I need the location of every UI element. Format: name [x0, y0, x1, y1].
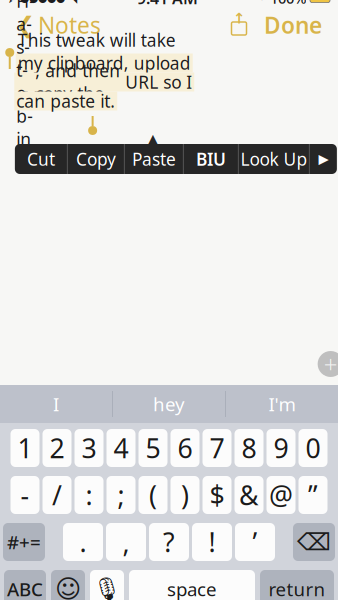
button[interactable]: 7 — [202, 429, 231, 467]
button[interactable]: Copy — [68, 144, 124, 174]
staticText: 100% — [266, 0, 310, 8]
button[interactable]: Paste — [125, 144, 183, 174]
staticText: ᶠ — [330, 0, 333, 7]
button[interactable]: space — [129, 570, 255, 600]
staticText: 🎙 — [92, 576, 121, 600]
button[interactable]: 5 — [138, 429, 167, 467]
button[interactable]: ❮ — [8, 9, 109, 41]
staticText: ! — [208, 524, 215, 560]
staticText: Copy — [76, 147, 116, 170]
button[interactable]: ( — [138, 476, 167, 514]
staticText: , — [122, 524, 129, 560]
button[interactable]: Emoji — [51, 570, 85, 600]
button[interactable]: B — [184, 144, 238, 174]
button[interactable]: Delete — [293, 523, 335, 561]
staticText: U — [213, 147, 226, 170]
button[interactable]: 2 — [42, 429, 71, 467]
button[interactable]: ? — [149, 523, 189, 561]
button[interactable]: Look Up — [239, 144, 309, 174]
staticText: 3 — [81, 430, 96, 466]
staticText: Look Up — [240, 147, 307, 170]
button[interactable]: 8 — [234, 429, 263, 467]
staticText: ABC — [7, 577, 43, 600]
button[interactable]: 4 — [106, 429, 135, 467]
button[interactable]: Dictation — [90, 570, 124, 600]
staticText: #+= — [7, 530, 41, 554]
staticText: ) — [181, 477, 189, 513]
button[interactable]: - — [10, 476, 39, 514]
button[interactable]: hey — [113, 385, 225, 423]
staticText: : — [85, 477, 92, 513]
button[interactable]: 0 — [298, 429, 327, 467]
staticText: 2 — [49, 430, 64, 466]
staticText: ●●●●● — [17, 0, 68, 4]
staticText: ? — [163, 524, 175, 560]
button[interactable]: . — [63, 523, 103, 561]
button[interactable]: Cut — [15, 144, 67, 174]
staticText: Notes — [38, 10, 101, 40]
button[interactable]: ABC — [4, 570, 46, 600]
button[interactable]: & — [234, 476, 263, 514]
staticText: ’ — [252, 524, 257, 560]
button[interactable]: Share — [222, 9, 256, 41]
button[interactable]: 1 — [10, 429, 39, 467]
staticText: . — [79, 524, 86, 560]
button[interactable]: 9 — [266, 429, 295, 467]
staticText: Paste — [132, 147, 176, 170]
staticText: 1 — [17, 430, 32, 466]
button[interactable]: ; — [106, 476, 135, 514]
staticText: can paste it. — [16, 89, 115, 112]
staticText: 8 — [241, 430, 256, 466]
staticText: 6 — [177, 430, 192, 466]
staticText: return — [268, 577, 325, 600]
staticText: 0 — [305, 430, 320, 466]
button[interactable]: #+= — [3, 523, 45, 561]
button[interactable]: , — [106, 523, 146, 561]
staticText: I — [53, 392, 59, 416]
staticText: 5 — [145, 430, 160, 466]
button[interactable]: return — [260, 570, 334, 600]
staticText: + — [324, 348, 338, 380]
staticText: ❮ — [16, 12, 35, 38]
staticText: ▲ — [146, 130, 159, 150]
staticText: Done — [264, 10, 322, 40]
button[interactable]: / — [42, 476, 71, 514]
button[interactable]: ) — [170, 476, 199, 514]
button[interactable]: @ — [266, 476, 295, 514]
button[interactable]: I — [0, 385, 112, 423]
staticText: $ — [209, 477, 224, 513]
staticText: Hastebin — [16, 0, 35, 150]
staticText: ▶ — [318, 151, 328, 166]
button[interactable]: More — [310, 144, 337, 174]
staticText: 9 — [273, 430, 288, 466]
staticText: - — [20, 477, 29, 513]
staticText: URL so I — [120, 70, 192, 93]
staticText: ☺ — [55, 575, 81, 600]
staticText: 4 — [113, 430, 128, 466]
button[interactable]: I'm — [226, 385, 338, 423]
staticText: Cut — [27, 147, 55, 170]
staticText: ✈ — [5, 0, 17, 6]
staticText: ↑ — [233, 10, 245, 27]
staticText: ◥ — [68, 0, 77, 5]
staticText: I'm — [268, 392, 295, 416]
staticText: space — [167, 577, 217, 600]
button[interactable]: Add attachment — [314, 347, 338, 381]
button[interactable]: ! — [192, 523, 232, 561]
button[interactable]: $ — [202, 476, 231, 514]
staticText: 7 — [209, 430, 224, 466]
button[interactable]: ” — [298, 476, 327, 514]
button[interactable]: Done — [256, 9, 330, 41]
staticText: This tweak will take my clipboard, uploa… — [18, 28, 191, 98]
staticText: , and then copy the — [35, 59, 120, 105]
staticText: B — [196, 147, 207, 170]
button[interactable]: ’ — [235, 523, 275, 561]
button[interactable]: : — [74, 476, 103, 514]
staticText: 9:41 AM — [137, 0, 198, 9]
staticText: ” — [308, 477, 318, 513]
staticText: ; — [117, 477, 124, 513]
staticText: / — [52, 477, 62, 513]
button[interactable]: 6 — [170, 429, 199, 467]
button[interactable]: 3 — [74, 429, 103, 467]
